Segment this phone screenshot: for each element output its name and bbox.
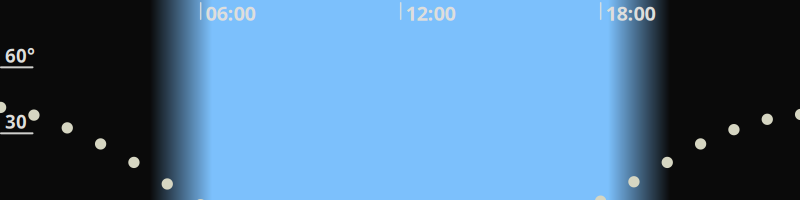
staticText: 06:00 (205, 0, 255, 26)
staticText: 60° (5, 43, 35, 68)
staticText: 30 (5, 109, 27, 134)
staticText: 18:00 (605, 0, 655, 26)
staticText: 12:00 (405, 0, 455, 26)
